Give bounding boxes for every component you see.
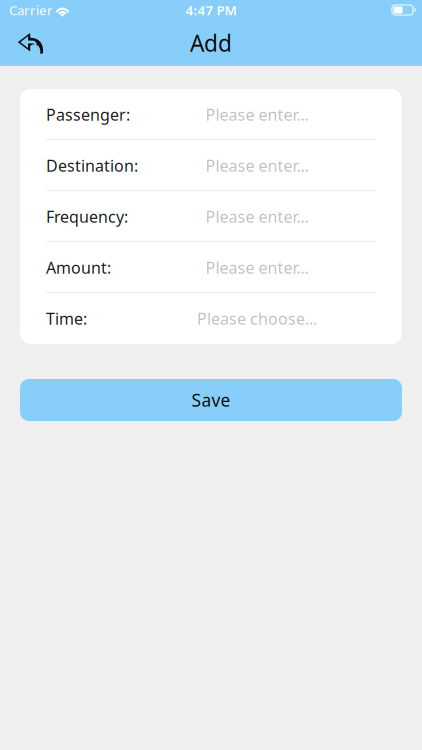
- button[interactable]: Passenger:: [20, 89, 402, 140]
- staticText: Add: [190, 28, 232, 58]
- staticText: Please enter...: [205, 155, 308, 176]
- staticText: Frequency:: [46, 206, 128, 227]
- staticText: Time:: [46, 308, 87, 329]
- staticText: Please enter...: [205, 206, 308, 227]
- button[interactable]: Destination:: [20, 140, 402, 191]
- staticText: Destination:: [46, 155, 138, 176]
- button[interactable]: Save: [20, 379, 402, 421]
- staticText: Please enter...: [205, 257, 308, 278]
- staticText: 4:47 PM: [185, 1, 236, 19]
- staticText: Save: [191, 388, 230, 411]
- button[interactable]: Time:: [20, 293, 402, 344]
- button[interactable]: Frequency:: [20, 191, 402, 242]
- staticText: Passenger:: [46, 104, 130, 125]
- staticText: Amount:: [46, 257, 111, 278]
- staticText: Please enter...: [205, 104, 308, 125]
- button[interactable]: Amount:: [20, 242, 402, 293]
- staticText: Please choose...: [197, 308, 317, 329]
- staticText: Carrier: [9, 1, 53, 19]
- button[interactable]: Back: [0, 21, 61, 65]
